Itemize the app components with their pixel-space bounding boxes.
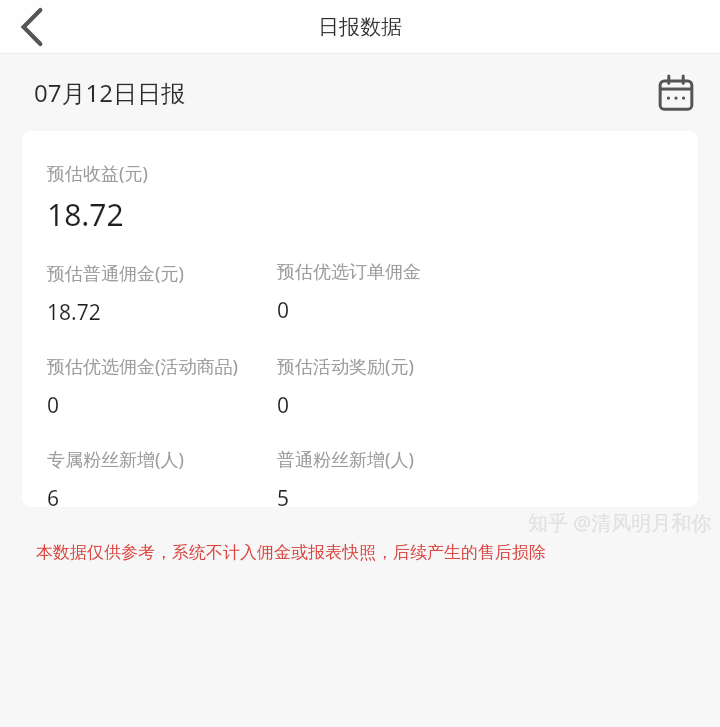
staticText: 普通粉丝新增(人)	[277, 447, 414, 472]
staticText: 预估优选佣金(活动商品)	[47, 354, 238, 379]
button[interactable]: 预估收益(元)	[22, 131, 698, 507]
staticText: 知乎 @清风明月和你	[528, 509, 712, 536]
staticText: 18.72	[47, 298, 101, 327]
staticText: 专属粉丝新增(人)	[47, 447, 184, 472]
staticText: 0	[277, 391, 290, 420]
staticText: 18.72	[47, 194, 124, 235]
button[interactable]: Pick date	[648, 65, 704, 121]
staticText: 6	[47, 484, 60, 507]
staticText: 预估活动奖励(元)	[277, 354, 414, 379]
staticText: 5	[277, 484, 290, 507]
staticText: 预估收益(元)	[47, 161, 148, 186]
staticText: 0	[47, 391, 60, 420]
staticText: 0	[277, 296, 290, 325]
staticText: 预估普通佣金(元)	[47, 261, 184, 286]
staticText: 预估优选订单佣金	[277, 261, 421, 284]
staticText: 本数据仅供参考，系统不计入佣金或报表快照，后续产生的售后损除	[36, 542, 546, 563]
staticText: 日报数据	[318, 14, 402, 40]
button[interactable]: Back	[4, 0, 60, 53]
staticText: 07月12日日报	[34, 76, 185, 109]
